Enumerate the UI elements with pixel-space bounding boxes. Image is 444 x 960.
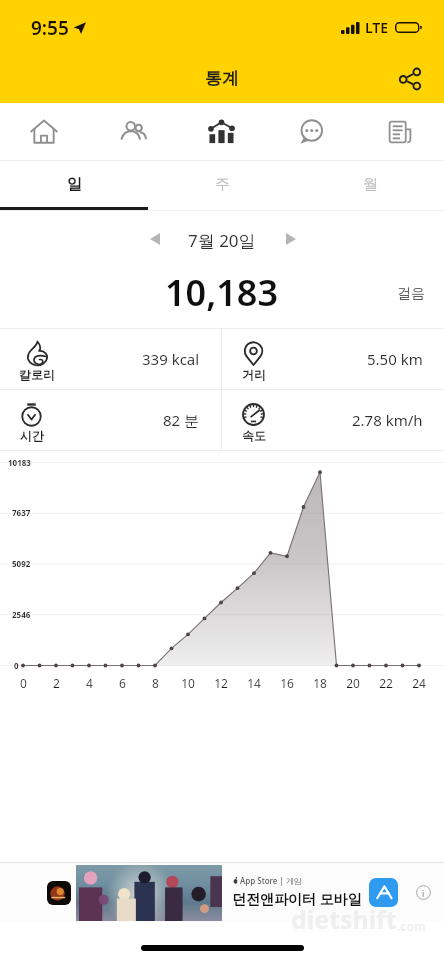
staticText: 14 [247, 675, 261, 691]
staticText: LTE [365, 18, 389, 37]
staticText: 통계 [205, 68, 239, 89]
button[interactable]: Home [0, 103, 88, 160]
staticText: 주 [215, 175, 230, 194]
button[interactable]: Next day [274, 222, 308, 256]
button[interactable]: Share [392, 61, 428, 97]
button[interactable]: 속도 [222, 390, 444, 450]
staticText: 시간 [20, 428, 44, 443]
staticText: 일 [67, 175, 82, 194]
button[interactable]: Statistics [177, 103, 266, 160]
staticText: 거리 [242, 367, 266, 382]
staticText: 22 [379, 675, 393, 691]
staticText: 9:55 [31, 15, 69, 41]
staticText: 4 [86, 675, 93, 691]
button[interactable]: 시간 [0, 390, 221, 450]
button[interactable]: News [355, 103, 444, 160]
staticText: 24 [412, 675, 426, 691]
staticText: 월 [363, 175, 378, 194]
button[interactable]: Chat [266, 103, 355, 160]
staticText: 12 [214, 675, 228, 691]
staticText: 칼로리 [19, 367, 55, 382]
staticText: 2 [53, 675, 60, 691]
button[interactable]: Previous day [138, 222, 172, 256]
staticText: 0 [14, 660, 19, 671]
staticText: 7637 [12, 507, 31, 518]
button[interactable]: Open App Store [369, 878, 398, 907]
staticText: 7월 20일 [188, 229, 256, 252]
staticText: 20 [346, 675, 360, 691]
staticText: 2546 [12, 609, 31, 620]
button[interactable]: 거리 [222, 329, 444, 389]
staticText: 2.78 km/h [352, 410, 423, 430]
staticText: 82 분 [163, 410, 200, 430]
staticText: 0 [20, 675, 27, 691]
button[interactable]: 월 [296, 161, 444, 210]
staticText: .com [397, 918, 426, 934]
staticText: 10183 [8, 457, 31, 468]
button[interactable]: 일 [0, 161, 148, 210]
button[interactable]: Friends [88, 103, 177, 160]
staticText: 속도 [242, 428, 266, 443]
staticText: 던전앤파이터 모바일 [232, 889, 362, 908]
button[interactable]: 주 [148, 161, 296, 210]
staticText: 8 [152, 675, 159, 691]
staticText: 5092 [12, 558, 31, 569]
button[interactable]: Ad info [416, 885, 431, 900]
button[interactable]: 칼로리 [0, 329, 221, 389]
staticText: dietshift [291, 902, 397, 936]
staticText: 18 [313, 675, 327, 691]
staticText: 10,183 [165, 268, 279, 317]
staticText: 6 [119, 675, 126, 691]
staticText: 339 kcal [142, 349, 200, 369]
button[interactable]: App Store | 게임 [0, 863, 444, 922]
staticText: 16 [280, 675, 294, 691]
staticText: App Store | 게임 [240, 875, 302, 886]
staticText: 걸음 [397, 285, 425, 303]
staticText: i [422, 887, 425, 899]
staticText: 5.50 km [367, 349, 423, 369]
staticText: 10 [181, 675, 195, 691]
